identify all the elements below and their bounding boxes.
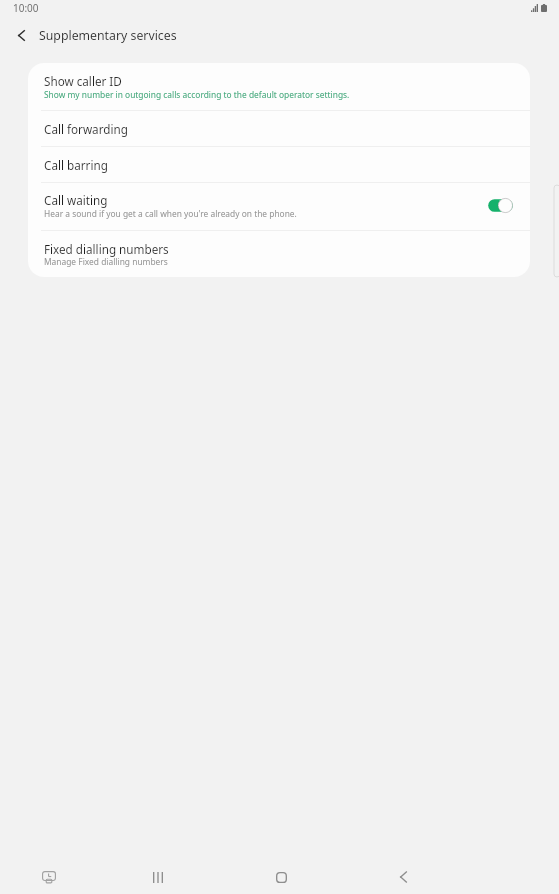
staticText: Manage Fixed dialling numbers xyxy=(44,256,168,267)
button[interactable]: Fixed dialling numbers xyxy=(28,231,530,277)
staticText: Show my number in outgoing calls accordi… xyxy=(44,89,350,100)
staticText: Supplementary services xyxy=(39,27,177,44)
button[interactable]: Show caller ID xyxy=(28,63,530,110)
button[interactable]: Call waiting xyxy=(486,196,515,215)
button[interactable]: Call barring xyxy=(28,147,530,182)
staticText: Fixed dialling numbers xyxy=(44,241,169,257)
staticText: Hear a sound if you get a call when you'… xyxy=(44,208,297,219)
button[interactable]: Home xyxy=(260,860,302,894)
staticText: Call forwarding xyxy=(44,121,128,137)
staticText: 10:00 xyxy=(13,1,39,15)
staticText: Show caller ID xyxy=(44,73,122,89)
button[interactable]: Show keyboard xyxy=(28,860,70,894)
button[interactable]: Call forwarding xyxy=(28,111,530,146)
button[interactable]: Call waiting xyxy=(28,183,530,230)
staticText: Call barring xyxy=(44,157,108,173)
button[interactable]: Recent apps xyxy=(137,860,179,894)
button[interactable]: Navigate up xyxy=(2,16,40,54)
staticText: Call waiting xyxy=(44,192,108,208)
button[interactable]: Back xyxy=(382,860,424,894)
